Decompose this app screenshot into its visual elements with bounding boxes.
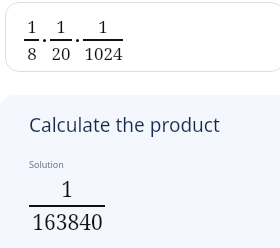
staticText: 20 — [51, 42, 71, 65]
staticText: 1 — [61, 175, 73, 204]
staticText: 1 — [27, 15, 37, 38]
staticText: 8 — [27, 42, 37, 65]
button[interactable]: Calculate the product — [29, 112, 220, 138]
staticText: 1 — [98, 15, 108, 38]
button[interactable]: 1 — [5, 2, 280, 72]
staticText: 163840 — [32, 208, 103, 237]
staticText: 1024 — [84, 42, 123, 65]
other: Result one over one hundred sixty three … — [29, 175, 105, 237]
staticText: 1 — [56, 15, 66, 38]
staticText: Solution — [29, 158, 64, 170]
